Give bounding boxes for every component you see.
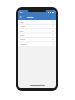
button[interactable]: Data bbox=[18, 29, 56, 33]
staticText: Accounts bbox=[20, 43, 27, 45]
staticText: 9:41 bbox=[20, 11, 23, 13]
staticText: Display bbox=[20, 38, 26, 40]
staticText: Wi-Fi bbox=[20, 21, 24, 23]
button[interactable]: Back bbox=[19, 15, 22, 18]
staticText: Settings bbox=[27, 16, 34, 18]
staticText: Data bbox=[20, 30, 24, 32]
button[interactable]: Sounds bbox=[18, 24, 56, 28]
button[interactable]: About bbox=[18, 33, 56, 37]
button[interactable]: Display bbox=[18, 37, 56, 41]
staticText: About bbox=[20, 34, 25, 36]
button[interactable]: Wi-Fi bbox=[18, 20, 56, 24]
staticText: Sounds bbox=[20, 25, 26, 27]
button[interactable]: Accounts bbox=[18, 42, 56, 46]
